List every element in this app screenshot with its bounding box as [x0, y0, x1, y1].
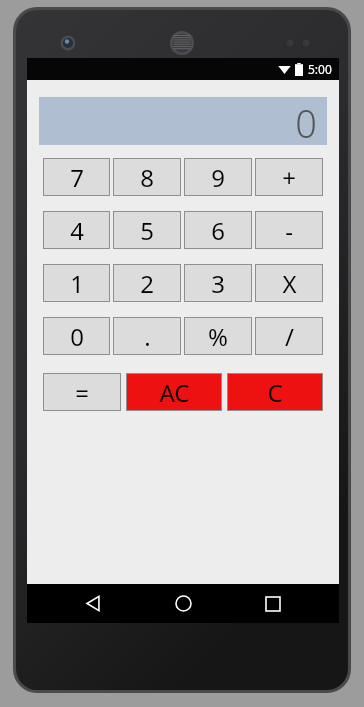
button[interactable]: C — [227, 373, 323, 411]
staticText: 5:00 — [308, 61, 332, 77]
staticText: AC — [159, 376, 190, 409]
button[interactable]: / — [255, 317, 323, 355]
staticText: 6 — [211, 214, 225, 247]
staticText: 1 — [70, 267, 84, 300]
button[interactable]: . — [113, 317, 181, 355]
staticText: - — [285, 214, 293, 247]
button[interactable]: 5 — [113, 211, 181, 249]
staticText: . — [144, 320, 151, 353]
staticText: / — [285, 320, 294, 353]
button[interactable]: 3 — [184, 264, 252, 302]
staticText: % — [208, 320, 228, 353]
staticText: 0 — [70, 320, 84, 353]
staticText: 3 — [211, 267, 225, 300]
staticText: 2 — [140, 267, 154, 300]
staticText: + — [282, 161, 296, 194]
button[interactable]: - — [255, 211, 323, 249]
button[interactable]: % — [184, 317, 252, 355]
staticText: 7 — [70, 161, 84, 194]
button[interactable]: 8 — [113, 158, 181, 196]
button[interactable]: Recent apps — [249, 584, 297, 623]
button[interactable]: 0 — [39, 97, 327, 145]
button[interactable]: 9 — [184, 158, 252, 196]
button[interactable]: Home — [159, 584, 207, 623]
staticText: X — [282, 267, 297, 300]
staticText: = — [75, 376, 89, 409]
button[interactable]: 4 — [43, 211, 110, 249]
button[interactable]: 6 — [184, 211, 252, 249]
staticText: 8 — [140, 161, 154, 194]
button[interactable]: 1 — [43, 264, 110, 302]
staticText: 9 — [211, 161, 225, 194]
button[interactable]: 7 — [43, 158, 110, 196]
button[interactable]: = — [43, 373, 121, 411]
staticText: 0 — [295, 97, 317, 145]
staticText: C — [267, 376, 283, 409]
button[interactable]: 0 — [43, 317, 110, 355]
button[interactable]: Back — [69, 584, 117, 623]
button[interactable]: X — [255, 264, 323, 302]
button[interactable]: 2 — [113, 264, 181, 302]
button[interactable]: + — [255, 158, 323, 196]
button[interactable]: AC — [126, 373, 222, 411]
staticText: 4 — [70, 214, 84, 247]
staticText: 5 — [140, 214, 154, 247]
